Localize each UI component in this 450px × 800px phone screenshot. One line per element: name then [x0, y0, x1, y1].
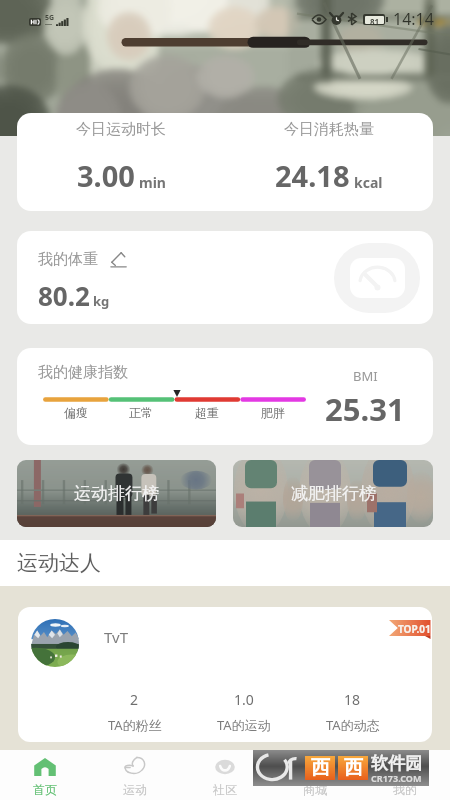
staticText: 首页	[33, 782, 57, 797]
staticText: 我的体重	[38, 250, 98, 269]
button[interactable]: 运动	[90, 750, 180, 800]
staticText: CR173.COM	[371, 772, 422, 784]
staticText: 今日消耗热量	[284, 120, 374, 139]
button[interactable]: 我的	[360, 750, 450, 800]
staticText: 运动达人	[17, 550, 101, 576]
staticText: min	[139, 173, 166, 192]
staticText: 西	[311, 756, 330, 780]
staticText: kcal	[354, 173, 383, 192]
staticText: TA的动态	[326, 716, 380, 734]
staticText: 14:14	[393, 8, 434, 30]
staticText: 偏瘦	[64, 405, 88, 420]
staticText: 81	[370, 16, 380, 24]
staticText: TA的运动	[217, 716, 271, 734]
staticText: 18	[344, 690, 361, 709]
button[interactable]: 社区	[180, 750, 270, 800]
staticText: TvT	[104, 627, 129, 647]
staticText: 1.0	[234, 690, 254, 709]
button[interactable]: 编辑体重	[110, 251, 128, 269]
staticText: 超重	[195, 405, 219, 420]
button[interactable]: 运动排行榜	[17, 460, 216, 527]
staticText: 2	[130, 690, 139, 709]
staticText: 减肥排行榜	[291, 483, 376, 504]
staticText: 社区	[213, 782, 237, 797]
staticText: 25.31	[325, 388, 405, 430]
button[interactable]: 首页	[0, 750, 90, 800]
staticText: 运动排行榜	[74, 483, 159, 504]
staticText: 3.00	[77, 156, 135, 195]
staticText: 正常	[129, 405, 153, 420]
staticText: TA的粉丝	[108, 716, 162, 734]
staticText: 24.18	[275, 156, 350, 195]
staticText: 西	[344, 756, 363, 780]
staticText: 我的	[393, 782, 417, 797]
staticText: 商城	[303, 782, 327, 797]
staticText: 肥胖	[261, 405, 285, 420]
staticText: TOP.01	[398, 622, 431, 636]
staticText: BMI	[353, 367, 378, 385]
staticText: 80.2	[38, 278, 90, 313]
staticText: 运动	[123, 782, 147, 797]
button[interactable]: 商城	[270, 750, 360, 800]
button[interactable]: TvT	[18, 607, 432, 742]
staticText: 我的健康指数	[38, 363, 128, 382]
staticText: 软件园	[371, 753, 422, 774]
staticText: kg	[93, 292, 110, 310]
button[interactable]: 减肥排行榜	[233, 460, 433, 527]
staticText: 今日运动时长	[76, 120, 166, 139]
staticText: 5G	[45, 13, 55, 23]
